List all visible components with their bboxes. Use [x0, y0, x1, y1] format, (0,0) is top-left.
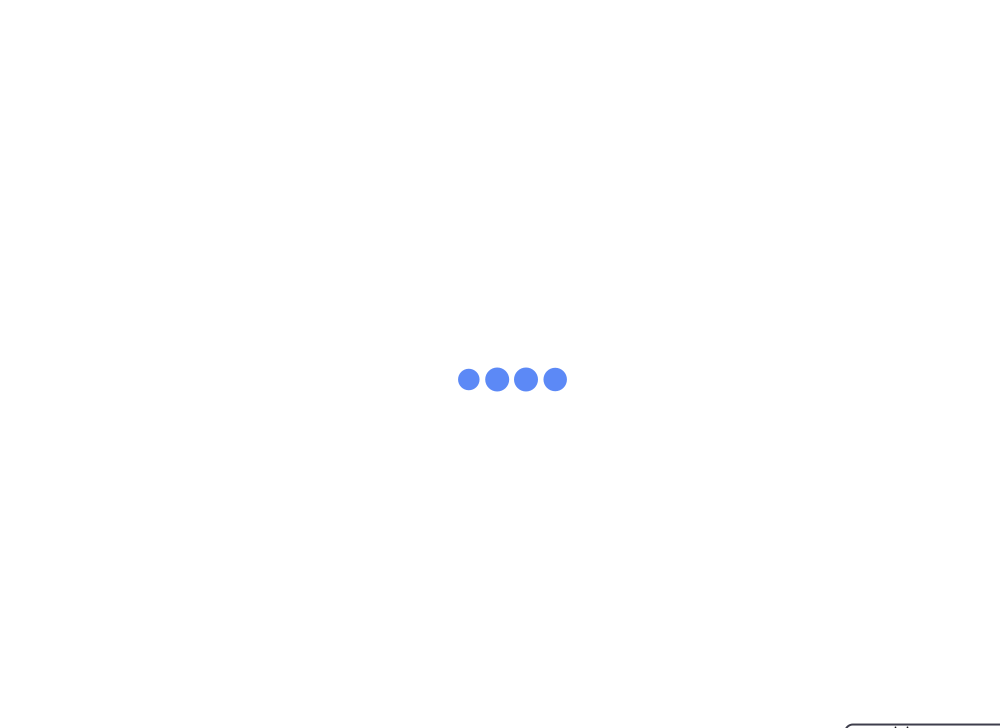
button[interactable]: Notification [845, 724, 1000, 728]
progressIndicator: Loading [0, 0, 1000, 728]
